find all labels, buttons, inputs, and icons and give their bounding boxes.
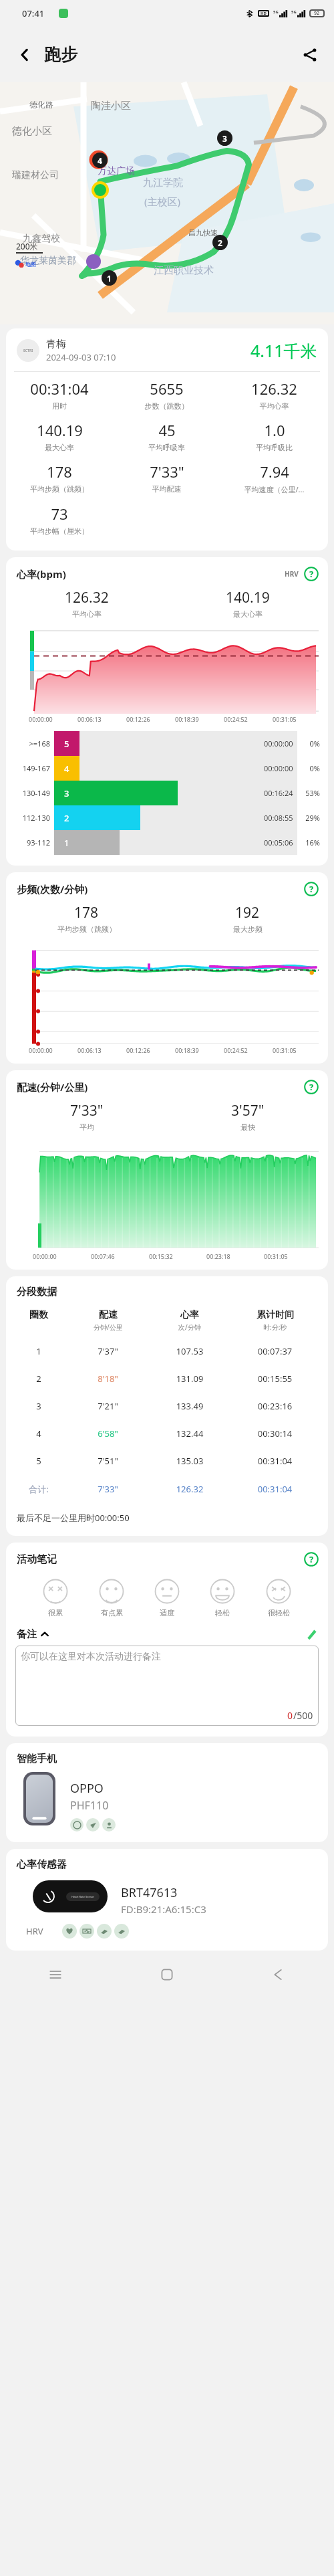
staticText: 最大步频 — [233, 924, 263, 934]
staticText: 九鑫驾校 — [23, 233, 60, 245]
staticText: 00:12:26 — [126, 1046, 175, 1054]
staticText: 00:05:06 — [264, 837, 293, 848]
staticText: 00:16:24 — [264, 788, 293, 798]
button[interactable]: Help — [304, 567, 319, 581]
staticText: 陶洼小区 — [91, 100, 131, 112]
staticText: HRV — [285, 569, 299, 579]
staticText: 93-112 — [15, 837, 50, 848]
staticText: 112-130 — [15, 813, 50, 823]
staticText: 用时 — [6, 401, 113, 411]
staticText: 瑞建材公司 — [12, 169, 59, 181]
staticText: 平均速度（公里/... — [220, 484, 328, 494]
button[interactable]: 很累 — [40, 1579, 71, 1617]
button[interactable]: 1 — [13, 1337, 321, 1365]
staticText: 140.19 — [226, 588, 270, 607]
button[interactable]: 你可以在这里对本次活动进行备注 — [15, 1646, 319, 1726]
staticText: 00:00:00 — [29, 1046, 77, 1054]
staticText: 3 — [222, 133, 227, 144]
button[interactable]: Back — [11, 41, 39, 69]
staticText: 地图 — [25, 261, 36, 268]
staticText: 备注 — [17, 1628, 37, 1641]
staticText: 130-149 — [15, 788, 50, 798]
button[interactable]: 轻松 — [207, 1579, 238, 1617]
button[interactable]: Edit note — [304, 1627, 319, 1642]
button[interactable]: Back — [222, 1956, 334, 1993]
staticText: 很累 — [48, 1608, 63, 1617]
staticText: 圈数 — [29, 1309, 48, 1321]
staticText: 4 — [98, 155, 102, 166]
staticText: 29% — [297, 813, 320, 823]
staticText: 九江学院 — [143, 177, 183, 189]
staticText: ? — [309, 568, 314, 580]
staticText: 平均心率 — [220, 401, 328, 411]
button[interactable]: 适度 — [152, 1579, 182, 1617]
button[interactable]: 5 — [13, 1447, 321, 1474]
button[interactable]: Help — [304, 882, 319, 896]
staticText: 4 — [64, 763, 69, 775]
button[interactable]: 4 — [13, 1419, 321, 1447]
staticText: 3'57" — [231, 1101, 265, 1120]
staticText: 0 — [287, 1709, 293, 1722]
staticText: 有点累 — [101, 1608, 123, 1617]
staticText: 140.19 — [37, 420, 83, 440]
button[interactable]: Home — [111, 1956, 222, 1993]
staticText: 00:15:55 — [228, 1373, 321, 1385]
staticText: 7'33" — [65, 1483, 151, 1495]
button[interactable]: 3 — [13, 1392, 321, 1419]
staticText: 分段数据 — [17, 1286, 57, 1298]
staticText: 步数（跳数） — [113, 401, 220, 411]
staticText: ECTRI — [23, 349, 33, 353]
staticText: 5655 — [150, 379, 184, 399]
staticText: 平均步频（跳频） — [6, 484, 113, 494]
staticText: 2024-09-03 07:10 — [46, 351, 116, 363]
staticText: 德化小区 — [12, 125, 52, 138]
staticText: 合计: — [13, 1483, 65, 1495]
staticText: 4 — [13, 1427, 65, 1440]
staticText: 平均 — [79, 1122, 94, 1132]
staticText: 你可以在这里对本次活动进行备注 — [21, 1651, 161, 1663]
staticText: 智能手机 — [17, 1753, 57, 1765]
staticText: 8'18" — [65, 1373, 151, 1385]
staticText: 0% — [297, 763, 320, 773]
staticText: 00:23:18 — [206, 1252, 264, 1260]
staticText: 德化路 — [29, 100, 53, 110]
button[interactable]: 2 — [13, 1365, 321, 1392]
staticText: 00:12:26 — [126, 715, 175, 723]
staticText: 1 — [107, 273, 112, 284]
staticText: 3 — [64, 787, 69, 799]
staticText: 7'21" — [65, 1400, 151, 1412]
staticText: 53% — [297, 788, 320, 798]
staticText: 3 — [13, 1400, 65, 1412]
staticText: 青梅 — [46, 338, 66, 351]
staticText: 最快 — [240, 1122, 255, 1132]
staticText: 126.32 — [151, 1483, 228, 1495]
staticText: 华龙莱茵美郡 — [20, 255, 76, 267]
button[interactable]: Menu — [0, 1956, 111, 1993]
staticText: 178 — [74, 903, 99, 922]
staticText: /500 — [293, 1709, 313, 1722]
staticText: 07:41 — [22, 7, 45, 19]
staticText: FD:B9:21:A6:15:C3 — [121, 1902, 206, 1916]
staticText: 5G — [291, 9, 297, 15]
button[interactable]: 很轻松 — [263, 1579, 294, 1617]
staticText: 7'51" — [65, 1455, 151, 1467]
button[interactable]: 有点累 — [96, 1579, 127, 1617]
button[interactable]: Help — [304, 1080, 319, 1094]
staticText: 126.32 — [65, 588, 109, 607]
staticText: 次/分钟 — [178, 1322, 201, 1332]
staticText: 00:06:13 — [77, 715, 126, 723]
staticText: 00:00:00 — [29, 715, 77, 723]
staticText: 配速(分钟/公里) — [17, 1080, 88, 1094]
staticText: 平均步幅（厘米） — [6, 526, 113, 536]
staticText: 心率传感器 — [17, 1858, 67, 1871]
staticText: 00:31:04 — [228, 1483, 321, 1495]
staticText: 很轻松 — [268, 1608, 290, 1617]
button[interactable]: Help — [304, 1552, 319, 1567]
button[interactable]: Share — [295, 40, 325, 70]
staticText: 累计时间 — [257, 1309, 294, 1321]
staticText: 16% — [297, 837, 320, 848]
staticText: 00:00:00 — [264, 738, 293, 749]
staticText: 5 — [64, 738, 69, 750]
staticText: 73 — [51, 504, 68, 524]
staticText: HD — [261, 11, 267, 16]
